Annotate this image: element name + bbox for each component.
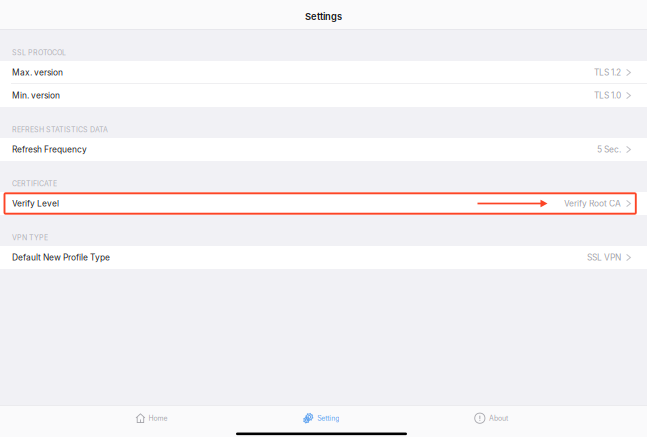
staticText: TLS 1.2 (594, 67, 621, 78)
staticText: Home (149, 414, 168, 422)
staticText: Setting (317, 414, 339, 422)
button[interactable]: Min. version (0, 84, 647, 107)
staticText: REFRESH STATISTICS DATA (12, 125, 108, 134)
staticText: CERTIFICATE (12, 179, 57, 188)
staticText: Verify Level (12, 198, 59, 209)
staticText: Verify Root CA (564, 198, 621, 209)
button[interactable]: Max. version (0, 61, 647, 84)
staticText: Default New Profile Type (12, 252, 110, 263)
button[interactable]: Home (134, 407, 168, 429)
button[interactable]: About (474, 407, 508, 429)
staticText: VPN TYPE (12, 233, 48, 242)
staticText: About (489, 414, 508, 422)
button[interactable]: Setting (302, 407, 340, 429)
staticText: Settings (305, 11, 342, 22)
staticText: 5 Sec. (597, 144, 621, 155)
staticText: Max. version (12, 67, 63, 78)
staticText: Refresh Frequency (12, 144, 87, 155)
staticText: TLS 1.0 (594, 90, 621, 101)
button[interactable]: Verify Level (0, 192, 647, 215)
button[interactable]: Refresh Frequency (0, 138, 647, 161)
staticText: SSL PROTOCOL (12, 48, 66, 57)
staticText: Min. version (12, 90, 60, 101)
button[interactable]: Default New Profile Type (0, 246, 647, 269)
staticText: SSL VPN (587, 252, 621, 263)
